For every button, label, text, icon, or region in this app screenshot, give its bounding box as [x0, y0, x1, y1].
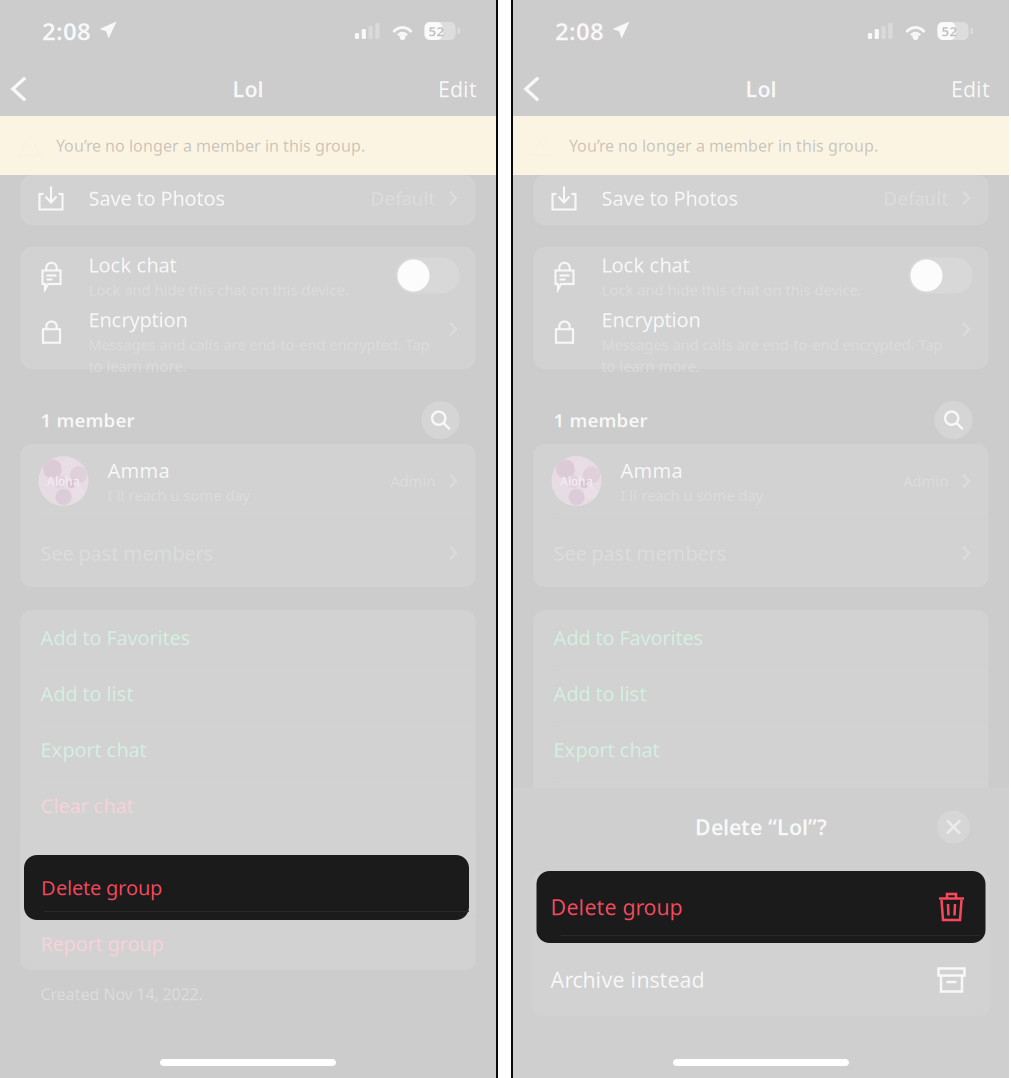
- staticText: Edit: [438, 75, 477, 103]
- staticText: See past members: [40, 540, 213, 566]
- button[interactable]: Delete group: [536, 871, 985, 943]
- staticText: Encryption: [601, 306, 700, 333]
- staticText: Clear chat: [40, 792, 133, 819]
- button[interactable]: Aloha: [533, 444, 988, 518]
- button[interactable]: Back: [513, 64, 551, 114]
- staticText: Default: [370, 186, 435, 210]
- staticText: Edit: [951, 75, 990, 103]
- button[interactable]: Clear chat: [533, 778, 988, 833]
- staticText: Amma: [107, 457, 169, 484]
- staticText: Delete “Lol”?: [695, 813, 827, 841]
- button[interactable]: Add to Favorites: [20, 610, 475, 665]
- button[interactable]: Close: [935, 808, 972, 845]
- button[interactable]: Back: [0, 64, 38, 114]
- button[interactable]: Clear chat: [20, 778, 475, 833]
- staticText: Lock chat: [88, 251, 176, 278]
- button[interactable]: Search members: [419, 399, 461, 441]
- staticText: You’re no longer a member in this group.: [569, 135, 878, 156]
- staticText: Delete group: [41, 874, 162, 901]
- staticText: Encryption: [88, 306, 187, 333]
- staticText: Created Nov 14, 2022.: [40, 983, 202, 1005]
- staticText: Report group: [553, 930, 676, 957]
- staticText: 52: [941, 22, 957, 40]
- staticText: Add to list: [40, 680, 133, 707]
- button[interactable]: Report group: [533, 917, 988, 970]
- staticText: Created Nov 14, 2022.: [553, 983, 715, 1005]
- button[interactable]: Delete group: [24, 855, 469, 920]
- button[interactable]: Aloha: [20, 444, 475, 518]
- staticText: 1 member: [40, 408, 134, 432]
- staticText: Add to Favorites: [553, 624, 703, 651]
- staticText: Export chat: [40, 736, 146, 763]
- staticText: Delete group: [550, 893, 682, 921]
- staticText: Lol: [745, 75, 776, 103]
- button[interactable]: Edit: [942, 65, 999, 113]
- staticText: Aloha: [560, 473, 593, 489]
- button[interactable]: Report group: [20, 917, 475, 970]
- button[interactable]: Export chat: [533, 722, 988, 777]
- button[interactable]: Encryption: [20, 304, 475, 369]
- staticText: 52: [428, 22, 444, 40]
- button[interactable]: Archive instead: [536, 943, 985, 1016]
- staticText: Aloha: [47, 473, 80, 489]
- staticText: Default: [883, 186, 948, 210]
- button[interactable]: Add to list: [533, 666, 988, 721]
- button[interactable]: Add to Favorites: [533, 610, 988, 665]
- staticText: Lol: [232, 75, 263, 103]
- button[interactable]: Add to list: [20, 666, 475, 721]
- staticText: Lock chat: [601, 251, 689, 278]
- staticText: Add to Favorites: [40, 624, 190, 651]
- button[interactable]: Edit: [429, 65, 486, 113]
- staticText: 1 member: [553, 408, 647, 432]
- button[interactable]: Save to Photos: [20, 171, 475, 225]
- staticText: Archive instead: [550, 965, 704, 994]
- staticText: to learn more.: [88, 356, 186, 376]
- staticText: 2:08: [42, 15, 91, 47]
- staticText: to learn more.: [601, 356, 699, 376]
- staticText: Save to Photos: [88, 185, 225, 211]
- staticText: Add to list: [553, 680, 646, 707]
- staticText: 2:08: [555, 15, 604, 47]
- button[interactable]: Lock chat: [20, 247, 475, 304]
- button[interactable]: Export chat: [20, 722, 475, 777]
- staticText: See past members: [553, 540, 726, 566]
- staticText: Save to Photos: [601, 185, 738, 211]
- button[interactable]: Encryption: [533, 304, 988, 369]
- button[interactable]: Lock chat: [533, 247, 988, 304]
- staticText: You’re no longer a member in this group.: [56, 135, 365, 156]
- staticText: Export chat: [553, 736, 659, 763]
- staticText: Amma: [620, 457, 682, 484]
- button[interactable]: Search members: [932, 399, 974, 441]
- button[interactable]: Save to Photos: [533, 171, 988, 225]
- staticText: Report group: [40, 930, 163, 957]
